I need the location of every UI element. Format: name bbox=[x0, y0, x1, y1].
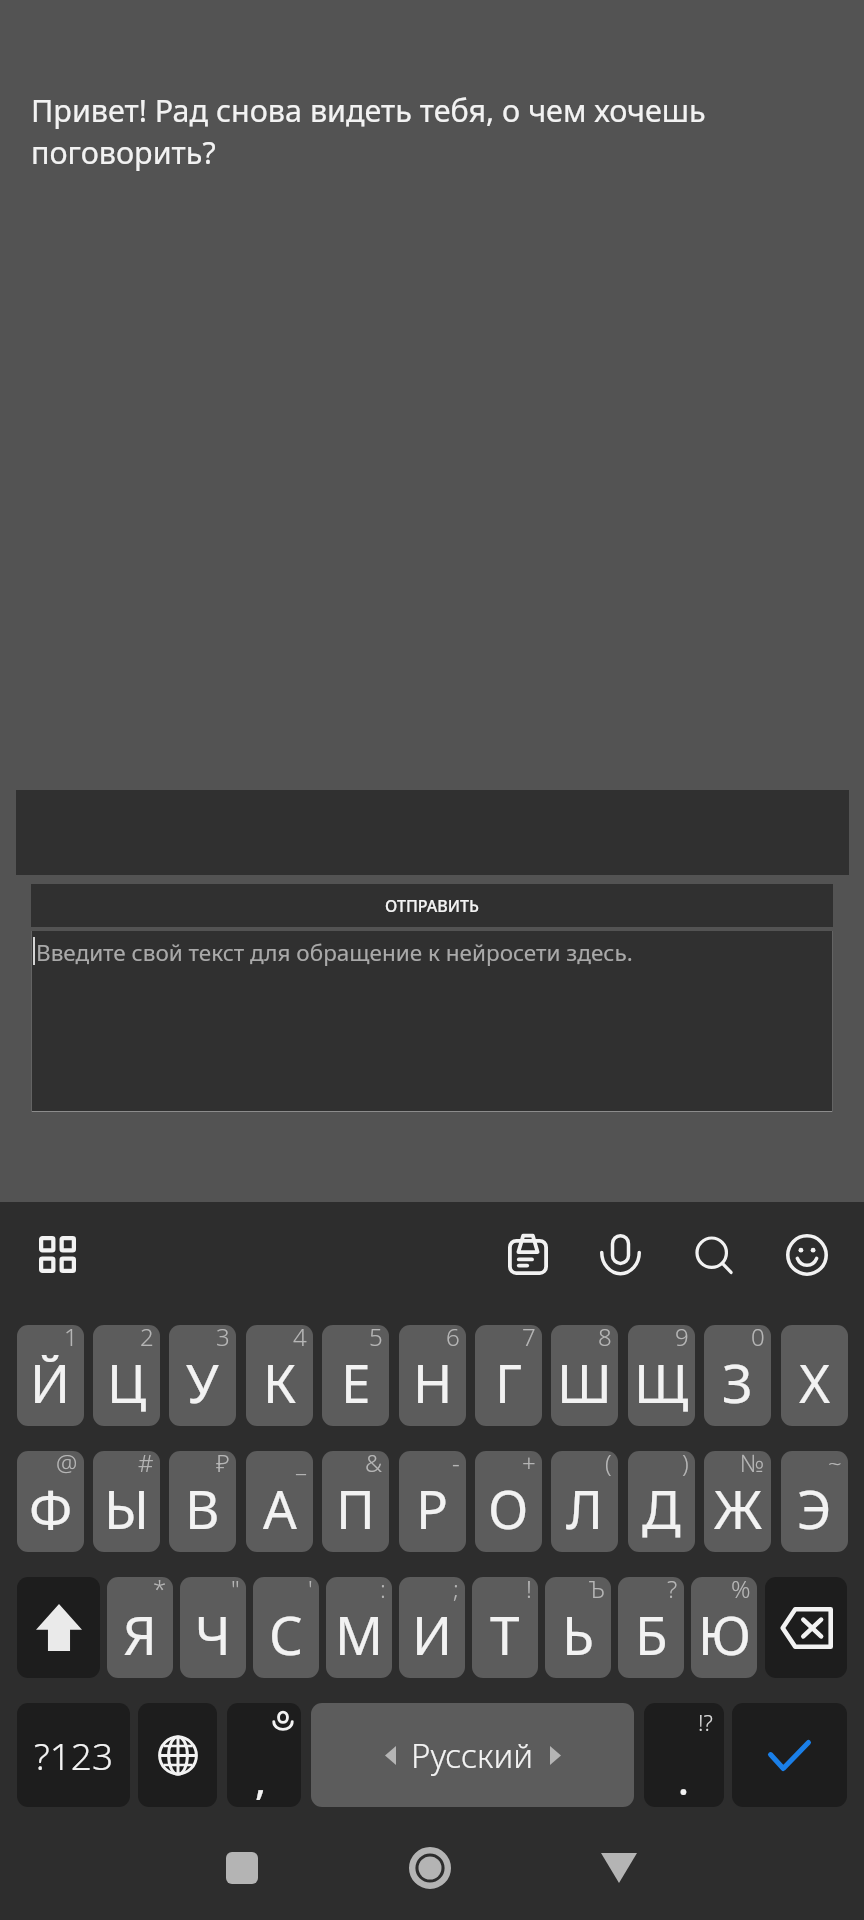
staticText: Ъ bbox=[589, 1577, 605, 1605]
button[interactable]: " bbox=[180, 1577, 246, 1678]
button[interactable]: ; bbox=[399, 1577, 465, 1678]
staticText: 5 bbox=[369, 1325, 383, 1353]
button[interactable]: Введите свой текст для обращение к нейро… bbox=[31, 931, 833, 1112]
staticText: ОТПРАВИТЬ bbox=[385, 895, 479, 917]
staticText: К bbox=[263, 1346, 297, 1418]
staticText: Ы bbox=[104, 1472, 149, 1544]
staticText: 8 bbox=[598, 1325, 612, 1353]
staticText: № bbox=[740, 1451, 765, 1479]
button[interactable]: Change language bbox=[138, 1703, 217, 1807]
staticText: - bbox=[452, 1451, 460, 1479]
staticText: Русский bbox=[411, 1733, 534, 1778]
staticText: С bbox=[269, 1598, 303, 1670]
staticText: Л bbox=[566, 1472, 603, 1544]
button[interactable]: Clipboard bbox=[497, 1223, 559, 1286]
staticText: Введите свой текст для обращение к нейро… bbox=[36, 937, 633, 968]
button[interactable]: * bbox=[107, 1577, 173, 1678]
button[interactable]: # bbox=[93, 1451, 160, 1552]
button[interactable]: _ bbox=[246, 1451, 313, 1552]
staticText: П bbox=[336, 1472, 375, 1544]
button[interactable]: ( bbox=[551, 1451, 618, 1552]
button[interactable]: ! bbox=[472, 1577, 538, 1678]
staticText: О bbox=[488, 1472, 529, 1544]
button[interactable]: ОТПРАВИТЬ bbox=[31, 884, 833, 927]
staticText: @ bbox=[56, 1451, 78, 1479]
button[interactable]: 0 bbox=[704, 1325, 771, 1426]
staticText: Й bbox=[30, 1346, 71, 1418]
button[interactable]: !? bbox=[644, 1703, 724, 1807]
staticText: 7 bbox=[522, 1325, 536, 1353]
staticText: Ц bbox=[107, 1346, 147, 1418]
staticText: ~ bbox=[828, 1451, 842, 1479]
button[interactable]: Home bbox=[400, 1838, 460, 1898]
staticText: ' bbox=[308, 1577, 313, 1605]
staticText: Е bbox=[341, 1346, 371, 1418]
button[interactable]: 8 bbox=[551, 1325, 618, 1426]
button[interactable]: ~ bbox=[781, 1451, 848, 1552]
staticText: 0 bbox=[751, 1325, 765, 1353]
staticText: ? bbox=[667, 1577, 678, 1605]
button[interactable]: Voice input bbox=[589, 1223, 652, 1286]
button[interactable]: ) bbox=[628, 1451, 695, 1552]
staticText: Ч bbox=[195, 1598, 231, 1670]
button[interactable]: 2 bbox=[93, 1325, 160, 1426]
staticText: Р bbox=[416, 1472, 449, 1544]
staticText: И bbox=[412, 1598, 453, 1670]
button[interactable]: & bbox=[322, 1451, 389, 1552]
staticText: У bbox=[186, 1346, 219, 1418]
button[interactable]: ?123 bbox=[17, 1703, 130, 1807]
staticText: Н bbox=[413, 1346, 453, 1418]
staticText: " bbox=[231, 1577, 240, 1605]
button[interactable]: 9 bbox=[628, 1325, 695, 1426]
staticText: Привет! Рад снова видеть тебя, о чем хоч… bbox=[31, 89, 731, 173]
button[interactable]: Space, Russian bbox=[311, 1703, 634, 1807]
button[interactable]: + bbox=[475, 1451, 542, 1552]
button[interactable]: ? bbox=[618, 1577, 684, 1678]
button[interactable]: 4 bbox=[246, 1325, 313, 1426]
button[interactable]: Х bbox=[781, 1325, 848, 1426]
button[interactable]: : bbox=[326, 1577, 392, 1678]
button[interactable]: Search bbox=[684, 1225, 744, 1285]
staticText: !? bbox=[698, 1707, 713, 1737]
staticText: Ж bbox=[714, 1472, 762, 1544]
button[interactable]: Recent apps bbox=[212, 1838, 272, 1898]
staticText: Б bbox=[635, 1598, 668, 1670]
button[interactable]: Apps bbox=[27, 1225, 87, 1285]
button[interactable]: ' bbox=[253, 1577, 319, 1678]
button[interactable]: Shift bbox=[17, 1577, 100, 1678]
staticText: З bbox=[722, 1346, 753, 1418]
button[interactable]: % bbox=[691, 1577, 757, 1678]
staticText: ?123 bbox=[34, 1730, 114, 1780]
button[interactable]: 6 bbox=[399, 1325, 466, 1426]
button[interactable]: Emoji bbox=[775, 1223, 839, 1287]
button[interactable]: , bbox=[227, 1703, 301, 1807]
button[interactable]: - bbox=[399, 1451, 466, 1552]
staticText: 2 bbox=[140, 1325, 154, 1353]
staticText: Г bbox=[495, 1346, 522, 1418]
staticText: Т bbox=[490, 1598, 520, 1670]
staticText: . bbox=[678, 1752, 689, 1806]
staticText: ) bbox=[682, 1451, 689, 1479]
staticText: 3 bbox=[216, 1325, 230, 1353]
staticText: Ф bbox=[29, 1472, 73, 1544]
button[interactable]: 1 bbox=[17, 1325, 84, 1426]
staticText: _ bbox=[296, 1451, 307, 1479]
staticText: , bbox=[255, 1752, 266, 1806]
button[interactable]: ₽ bbox=[169, 1451, 236, 1552]
button[interactable]: № bbox=[704, 1451, 771, 1552]
button[interactable]: Ъ bbox=[545, 1577, 611, 1678]
staticText: А bbox=[263, 1472, 297, 1544]
staticText: Х bbox=[799, 1346, 831, 1418]
button[interactable]: Done bbox=[732, 1703, 847, 1807]
staticText: * bbox=[153, 1577, 167, 1605]
staticText: Щ bbox=[634, 1346, 689, 1418]
button[interactable]: @ bbox=[17, 1451, 84, 1552]
button[interactable]: Back bbox=[589, 1838, 649, 1898]
button[interactable]: 5 bbox=[322, 1325, 389, 1426]
staticText: % bbox=[731, 1577, 751, 1605]
button[interactable]: Backspace bbox=[765, 1577, 847, 1678]
staticText: 6 bbox=[446, 1325, 460, 1353]
button[interactable]: 7 bbox=[475, 1325, 542, 1426]
staticText: ; bbox=[453, 1577, 459, 1605]
button[interactable]: 3 bbox=[169, 1325, 236, 1426]
